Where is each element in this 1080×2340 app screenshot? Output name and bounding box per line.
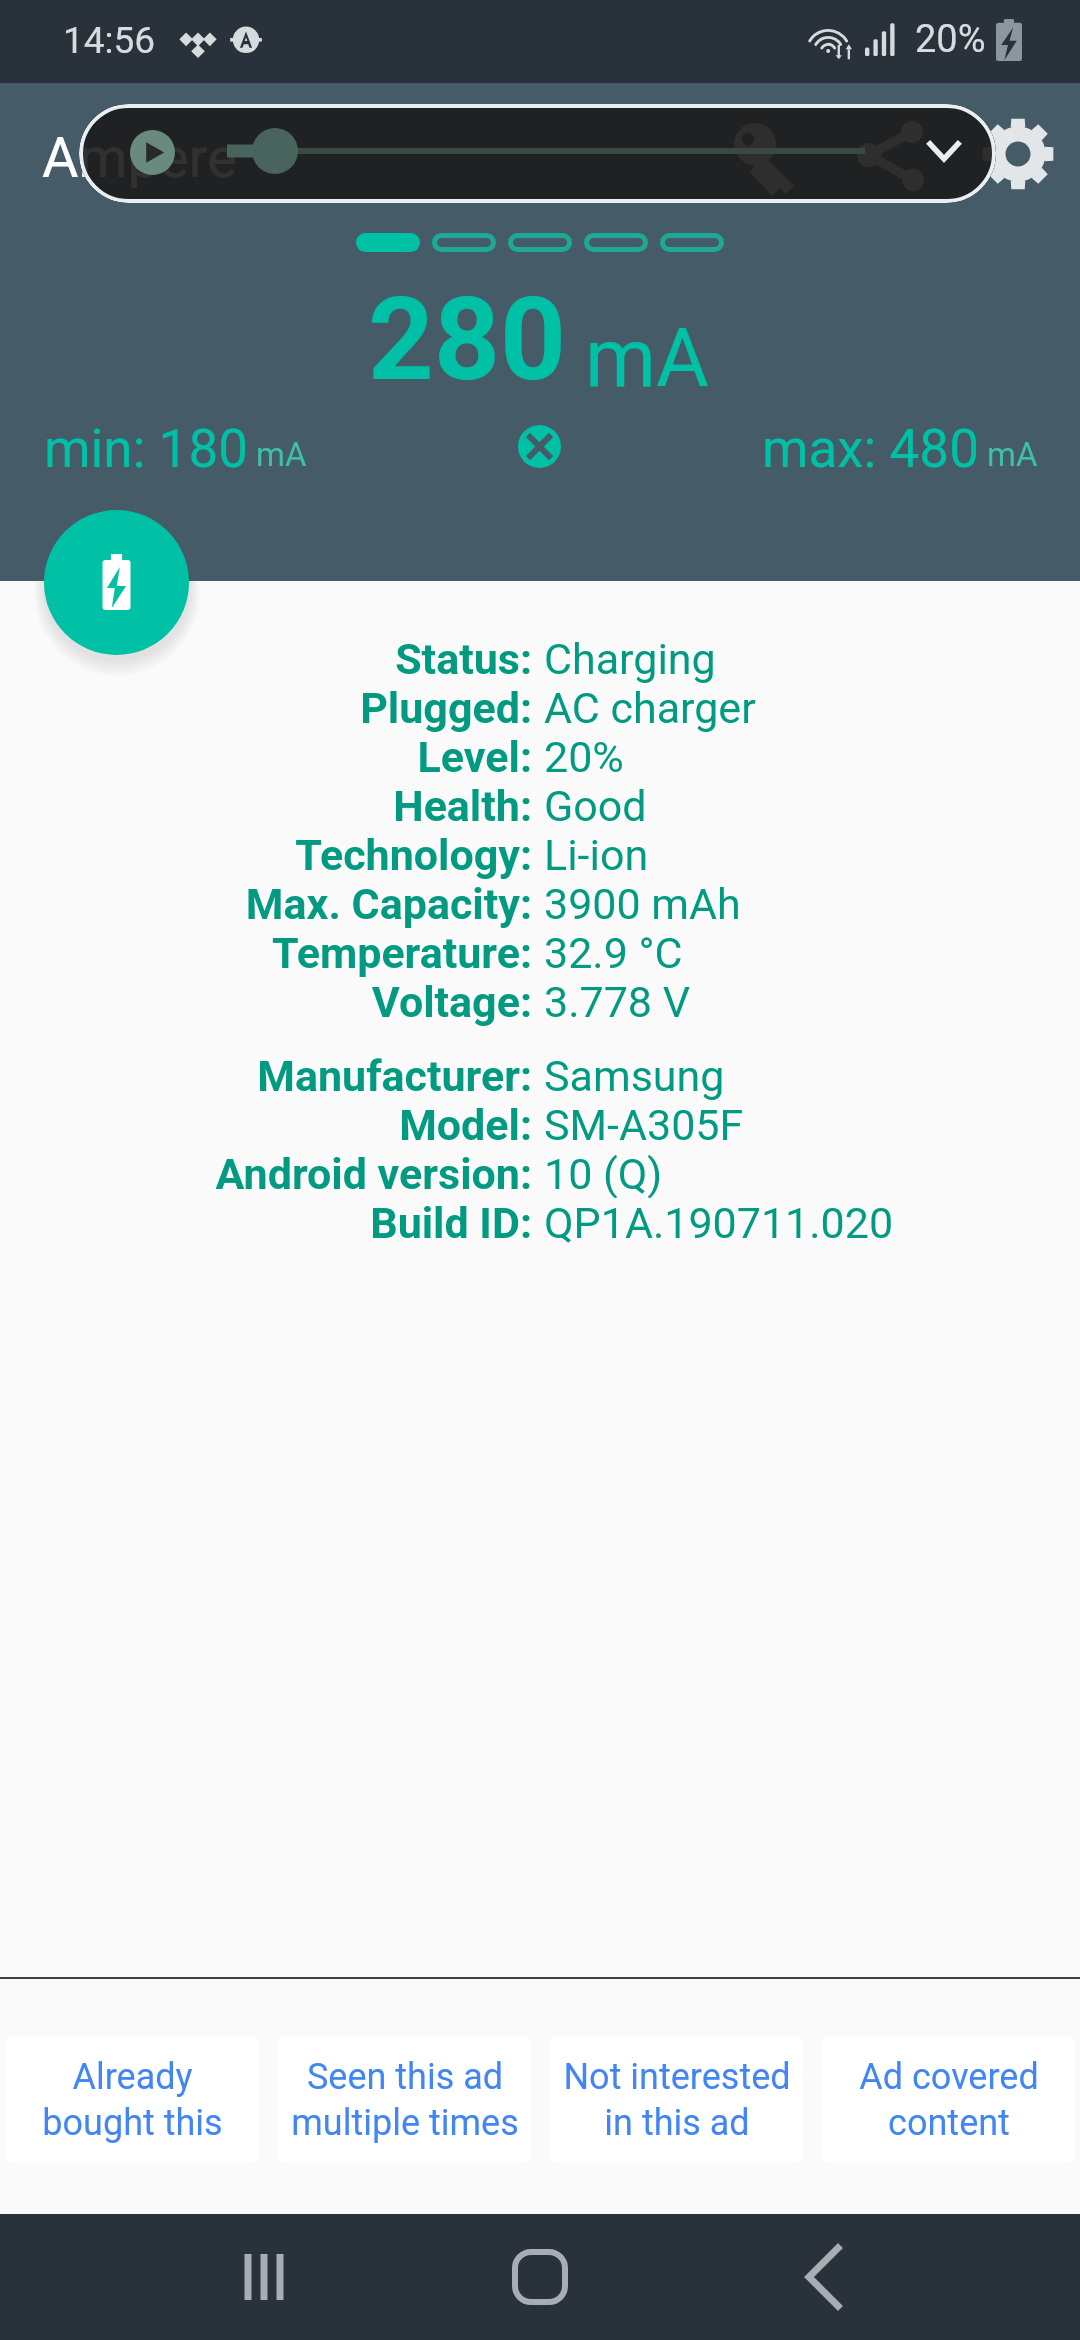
- staticText: Model:: [0, 1100, 532, 1149]
- button[interactable]: Android version:: [0, 1149, 1080, 1198]
- button[interactable]: Plugged:: [0, 683, 1080, 732]
- button[interactable]: Recent apps: [204, 2217, 324, 2337]
- button[interactable]: Status:: [0, 634, 1080, 683]
- button[interactable]: Technology:: [0, 830, 1080, 879]
- staticText: mA: [585, 311, 709, 406]
- button[interactable]: Unlock pro version: [720, 110, 798, 188]
- staticText: Temperature:: [0, 928, 532, 977]
- button[interactable]: Play: [130, 130, 175, 175]
- staticText: Charging: [544, 634, 716, 683]
- staticText: Technology:: [0, 830, 532, 879]
- staticText: mA: [987, 435, 1038, 474]
- staticText: Already bought this: [42, 2056, 223, 2144]
- button[interactable]: Not interested in this ad: [550, 2036, 803, 2163]
- staticText: 14:56: [63, 19, 156, 62]
- staticText: Li-ion: [544, 830, 649, 879]
- staticText: QP1A.190711.020: [544, 1198, 894, 1247]
- button[interactable]: Home: [480, 2217, 600, 2337]
- button[interactable]: Charging status: [44, 510, 189, 655]
- staticText: Voltage:: [0, 977, 532, 1026]
- staticText: Samsung: [544, 1051, 725, 1100]
- button[interactable]: Reset: [518, 425, 561, 468]
- staticText: 20%: [915, 17, 986, 62]
- staticText: Not interested in this ad: [563, 2056, 791, 2144]
- button[interactable]: Max. Capacity:: [0, 879, 1080, 928]
- button[interactable]: Manufacturer:: [0, 1051, 1080, 1100]
- button[interactable]: Settings: [980, 116, 1056, 192]
- button[interactable]: Voltage:: [0, 977, 1080, 1026]
- staticText: Ampere: [42, 125, 237, 191]
- button[interactable]: Already bought this: [6, 2036, 259, 2163]
- staticText: Manufacturer:: [0, 1051, 532, 1100]
- staticText: 32.9 °C: [544, 928, 683, 977]
- staticText: 10 (Q): [544, 1149, 663, 1198]
- button[interactable]: Ad covered content: [822, 2036, 1075, 2163]
- staticText: SM-A305F: [544, 1100, 744, 1149]
- staticText: min: 180: [44, 418, 248, 480]
- staticText: Ad covered content: [859, 2056, 1039, 2144]
- staticText: 3.778 V: [544, 977, 691, 1026]
- button[interactable]: Health:: [0, 781, 1080, 830]
- button[interactable]: Level:: [0, 732, 1080, 781]
- button[interactable]: Temperature:: [0, 928, 1080, 977]
- button[interactable]: Share: [836, 113, 914, 191]
- staticText: 3900 mAh: [544, 879, 741, 928]
- staticText: Build ID:: [0, 1198, 532, 1247]
- button[interactable]: Model:: [0, 1100, 1080, 1149]
- button[interactable]: Back: [764, 2217, 884, 2337]
- staticText: Status:: [0, 634, 532, 683]
- staticText: mA: [256, 435, 307, 474]
- staticText: 20%: [544, 732, 624, 781]
- button[interactable]: Media controls: [79, 104, 996, 203]
- staticText: Health:: [0, 781, 532, 830]
- staticText: Level:: [0, 732, 532, 781]
- staticText: Seen this ad multiple times: [291, 2056, 519, 2144]
- button[interactable]: Seen this ad multiple times: [278, 2036, 531, 2163]
- staticText: max: 480: [762, 418, 979, 480]
- staticText: Good: [544, 781, 647, 830]
- staticText: Plugged:: [0, 683, 532, 732]
- staticText: Max. Capacity:: [0, 879, 532, 928]
- staticText: AC charger: [544, 683, 756, 732]
- button[interactable]: Build ID:: [0, 1198, 1080, 1247]
- staticText: 280: [368, 272, 566, 407]
- staticText: Android version:: [0, 1149, 532, 1198]
